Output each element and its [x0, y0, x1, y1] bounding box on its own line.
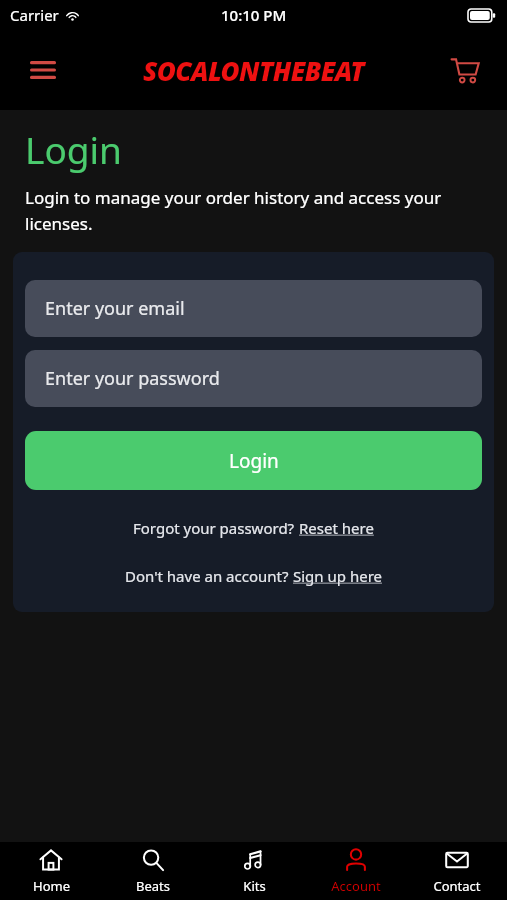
staticText: Kits	[243, 877, 266, 895]
button[interactable]: Cart	[443, 48, 487, 92]
staticText: 10:10 PM	[221, 5, 287, 25]
staticText: Carrier	[10, 5, 59, 25]
staticText: Reset here	[299, 518, 374, 538]
staticText: Enter your email	[45, 296, 185, 321]
button[interactable]: Enter your email	[25, 280, 482, 337]
staticText: Sign up here	[293, 566, 382, 586]
button[interactable]: Sign up here	[293, 566, 382, 586]
button[interactable]: Contact	[406, 842, 507, 900]
button[interactable]: Reset here	[299, 518, 374, 538]
button[interactable]: Menu	[22, 49, 64, 91]
staticText: Login to manage your order history and a…	[25, 186, 482, 235]
button[interactable]: Login	[25, 431, 482, 490]
staticText: Enter your password	[45, 366, 220, 391]
button[interactable]: Account	[305, 842, 406, 900]
staticText: Forgot your password?	[133, 518, 299, 538]
staticText: Login	[229, 448, 279, 474]
staticText: Home	[33, 877, 70, 895]
button[interactable]: Kits	[204, 842, 305, 900]
button[interactable]: Enter your password	[25, 350, 482, 407]
staticText: Beats	[136, 877, 170, 895]
staticText: Login	[25, 124, 122, 174]
button[interactable]: Beats	[102, 842, 204, 900]
staticText: SOCALONTHEBEAT	[143, 53, 365, 88]
staticText: Account	[331, 877, 381, 895]
staticText: Don't have an account?	[125, 566, 293, 586]
button[interactable]: Home	[0, 842, 102, 900]
staticText: Contact	[433, 877, 481, 895]
